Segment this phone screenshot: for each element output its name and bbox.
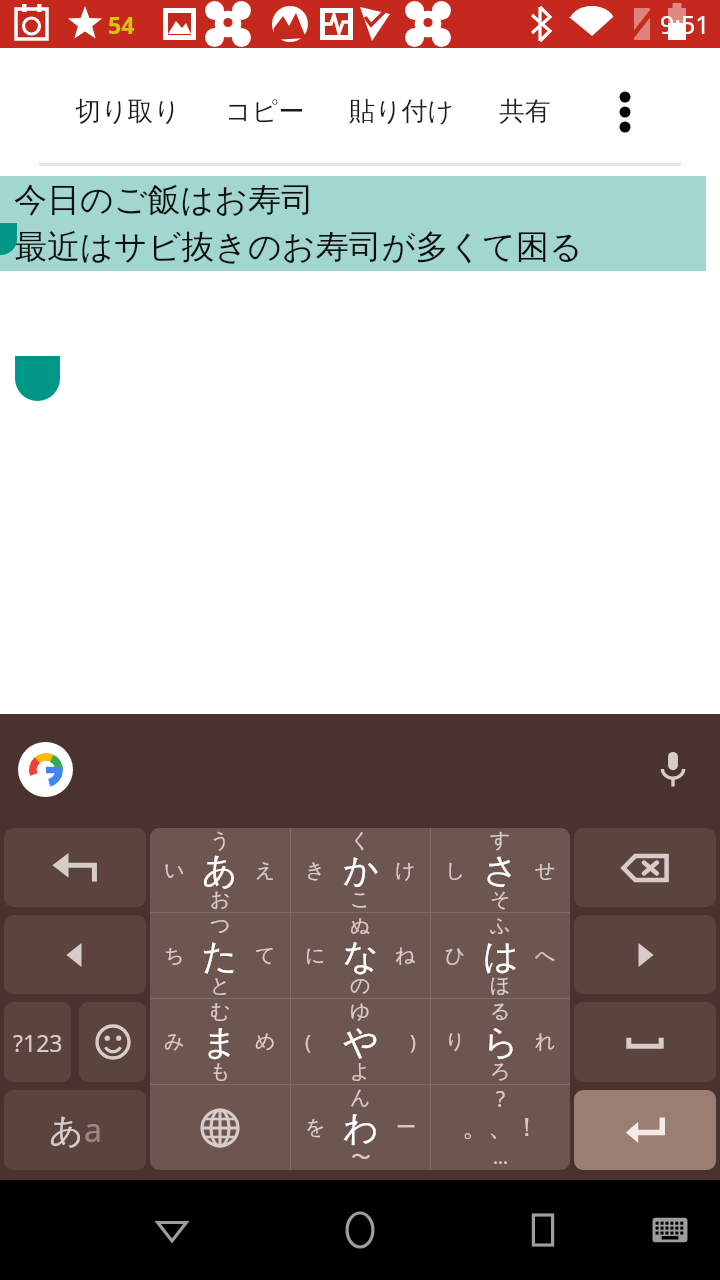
button[interactable]: 絵文字: [79, 1002, 146, 1082]
staticText: ん: [350, 1085, 371, 1110]
button[interactable]: キーボードを閉じる: [140, 1198, 204, 1262]
button[interactable]: さ: [431, 828, 570, 912]
staticText: ふ: [490, 913, 511, 938]
staticText: a: [84, 1108, 102, 1152]
staticText: ?123: [13, 1027, 63, 1058]
staticText: き: [305, 858, 326, 883]
staticText: ね: [395, 943, 416, 968]
staticText: (: [305, 1028, 311, 1055]
button[interactable]: [150, 1085, 290, 1170]
staticText: 最近はサビ抜きのお寿司が多くて困る: [14, 226, 583, 268]
staticText: や: [343, 1020, 379, 1064]
staticText: す: [490, 828, 511, 853]
staticText: つ: [210, 913, 231, 938]
button[interactable]: コピー: [203, 60, 327, 163]
button[interactable]: わ: [291, 1085, 430, 1170]
staticText: 。、！: [462, 1111, 540, 1144]
button[interactable]: あ: [150, 828, 290, 912]
button[interactable]: 共有: [477, 60, 569, 163]
staticText: い: [164, 858, 185, 883]
staticText: に: [305, 943, 326, 968]
button[interactable]: 音声入力: [646, 742, 700, 796]
button[interactable]: スペース: [574, 1002, 716, 1082]
button[interactable]: ?: [431, 1085, 570, 1170]
button[interactable]: 履歴: [511, 1198, 575, 1262]
staticText: さ: [483, 848, 519, 892]
staticText: る: [490, 999, 511, 1024]
staticText: の: [350, 973, 371, 998]
button[interactable]: 右へ: [574, 915, 716, 994]
staticText: ぬ: [350, 913, 371, 938]
staticText: ら: [483, 1020, 519, 1064]
staticText: 54: [108, 9, 135, 40]
button[interactable]: あ: [4, 1090, 146, 1170]
button[interactable]: は: [431, 913, 570, 998]
staticText: 貼り付け: [349, 95, 455, 128]
staticText: あ: [49, 1109, 84, 1152]
staticText: そ: [490, 887, 511, 912]
staticText: ひ: [445, 943, 466, 968]
staticText: ま: [202, 1020, 238, 1064]
button[interactable]: ら: [431, 999, 570, 1084]
staticText: け: [395, 858, 416, 883]
staticText: 〜: [351, 1145, 371, 1170]
staticText: て: [255, 943, 276, 968]
button[interactable]: Google: [18, 742, 73, 797]
staticText: し: [445, 858, 466, 883]
button[interactable]: ま: [150, 999, 290, 1084]
button[interactable]: 切り取り: [39, 60, 203, 163]
staticText: あ: [202, 848, 238, 892]
button[interactable]: 削除: [574, 828, 716, 907]
staticText: …: [493, 1144, 509, 1170]
staticText: く: [350, 828, 371, 853]
staticText: え: [255, 858, 276, 883]
staticText: ほ: [490, 973, 511, 998]
button[interactable]: ?123: [4, 1002, 71, 1082]
staticText: せ: [535, 858, 556, 883]
button[interactable]: や: [291, 999, 430, 1084]
button[interactable]: その他のオプション: [569, 60, 681, 163]
staticText: な: [343, 934, 379, 978]
staticText: コピー: [225, 95, 305, 128]
button[interactable]: か: [291, 828, 430, 912]
button[interactable]: ホーム: [328, 1198, 392, 1262]
staticText: ち: [164, 943, 185, 968]
button[interactable]: た: [150, 913, 290, 998]
staticText: ー: [396, 1115, 416, 1140]
staticText: み: [164, 1029, 185, 1054]
staticText: ろ: [490, 1059, 511, 1084]
staticText: 共有: [499, 95, 551, 128]
staticText: と: [210, 973, 231, 998]
staticText: も: [210, 1059, 231, 1084]
other: 選択終了ハンドル: [15, 356, 60, 401]
staticText: う: [210, 828, 231, 853]
staticText: め: [255, 1029, 276, 1054]
staticText: れ: [535, 1029, 556, 1054]
staticText: ゆ: [350, 999, 371, 1024]
staticText: 今日のご飯はお寿司: [14, 179, 315, 221]
staticText: 9:51: [660, 7, 710, 41]
button[interactable]: 左へ: [4, 915, 146, 994]
staticText: り: [445, 1029, 466, 1054]
button[interactable]: 入力方法の切り替え: [642, 1202, 698, 1258]
staticText: は: [483, 934, 519, 978]
staticText: お: [210, 887, 231, 912]
button[interactable]: 戻る: [4, 828, 146, 907]
staticText: へ: [535, 943, 556, 968]
other: 選択開始ハンドル: [0, 223, 17, 255]
staticText: わ: [343, 1106, 379, 1150]
staticText: ?: [496, 1085, 506, 1114]
staticText: よ: [350, 1059, 371, 1084]
staticText: た: [202, 934, 238, 978]
staticText: ): [410, 1028, 416, 1055]
staticText: を: [305, 1115, 326, 1140]
staticText: 切り取り: [75, 95, 181, 128]
staticText: こ: [350, 887, 371, 912]
button[interactable]: な: [291, 913, 430, 998]
staticText: む: [210, 999, 231, 1024]
staticText: か: [343, 848, 379, 892]
button[interactable]: 貼り付け: [327, 60, 477, 163]
button[interactable]: 改行: [574, 1090, 716, 1170]
